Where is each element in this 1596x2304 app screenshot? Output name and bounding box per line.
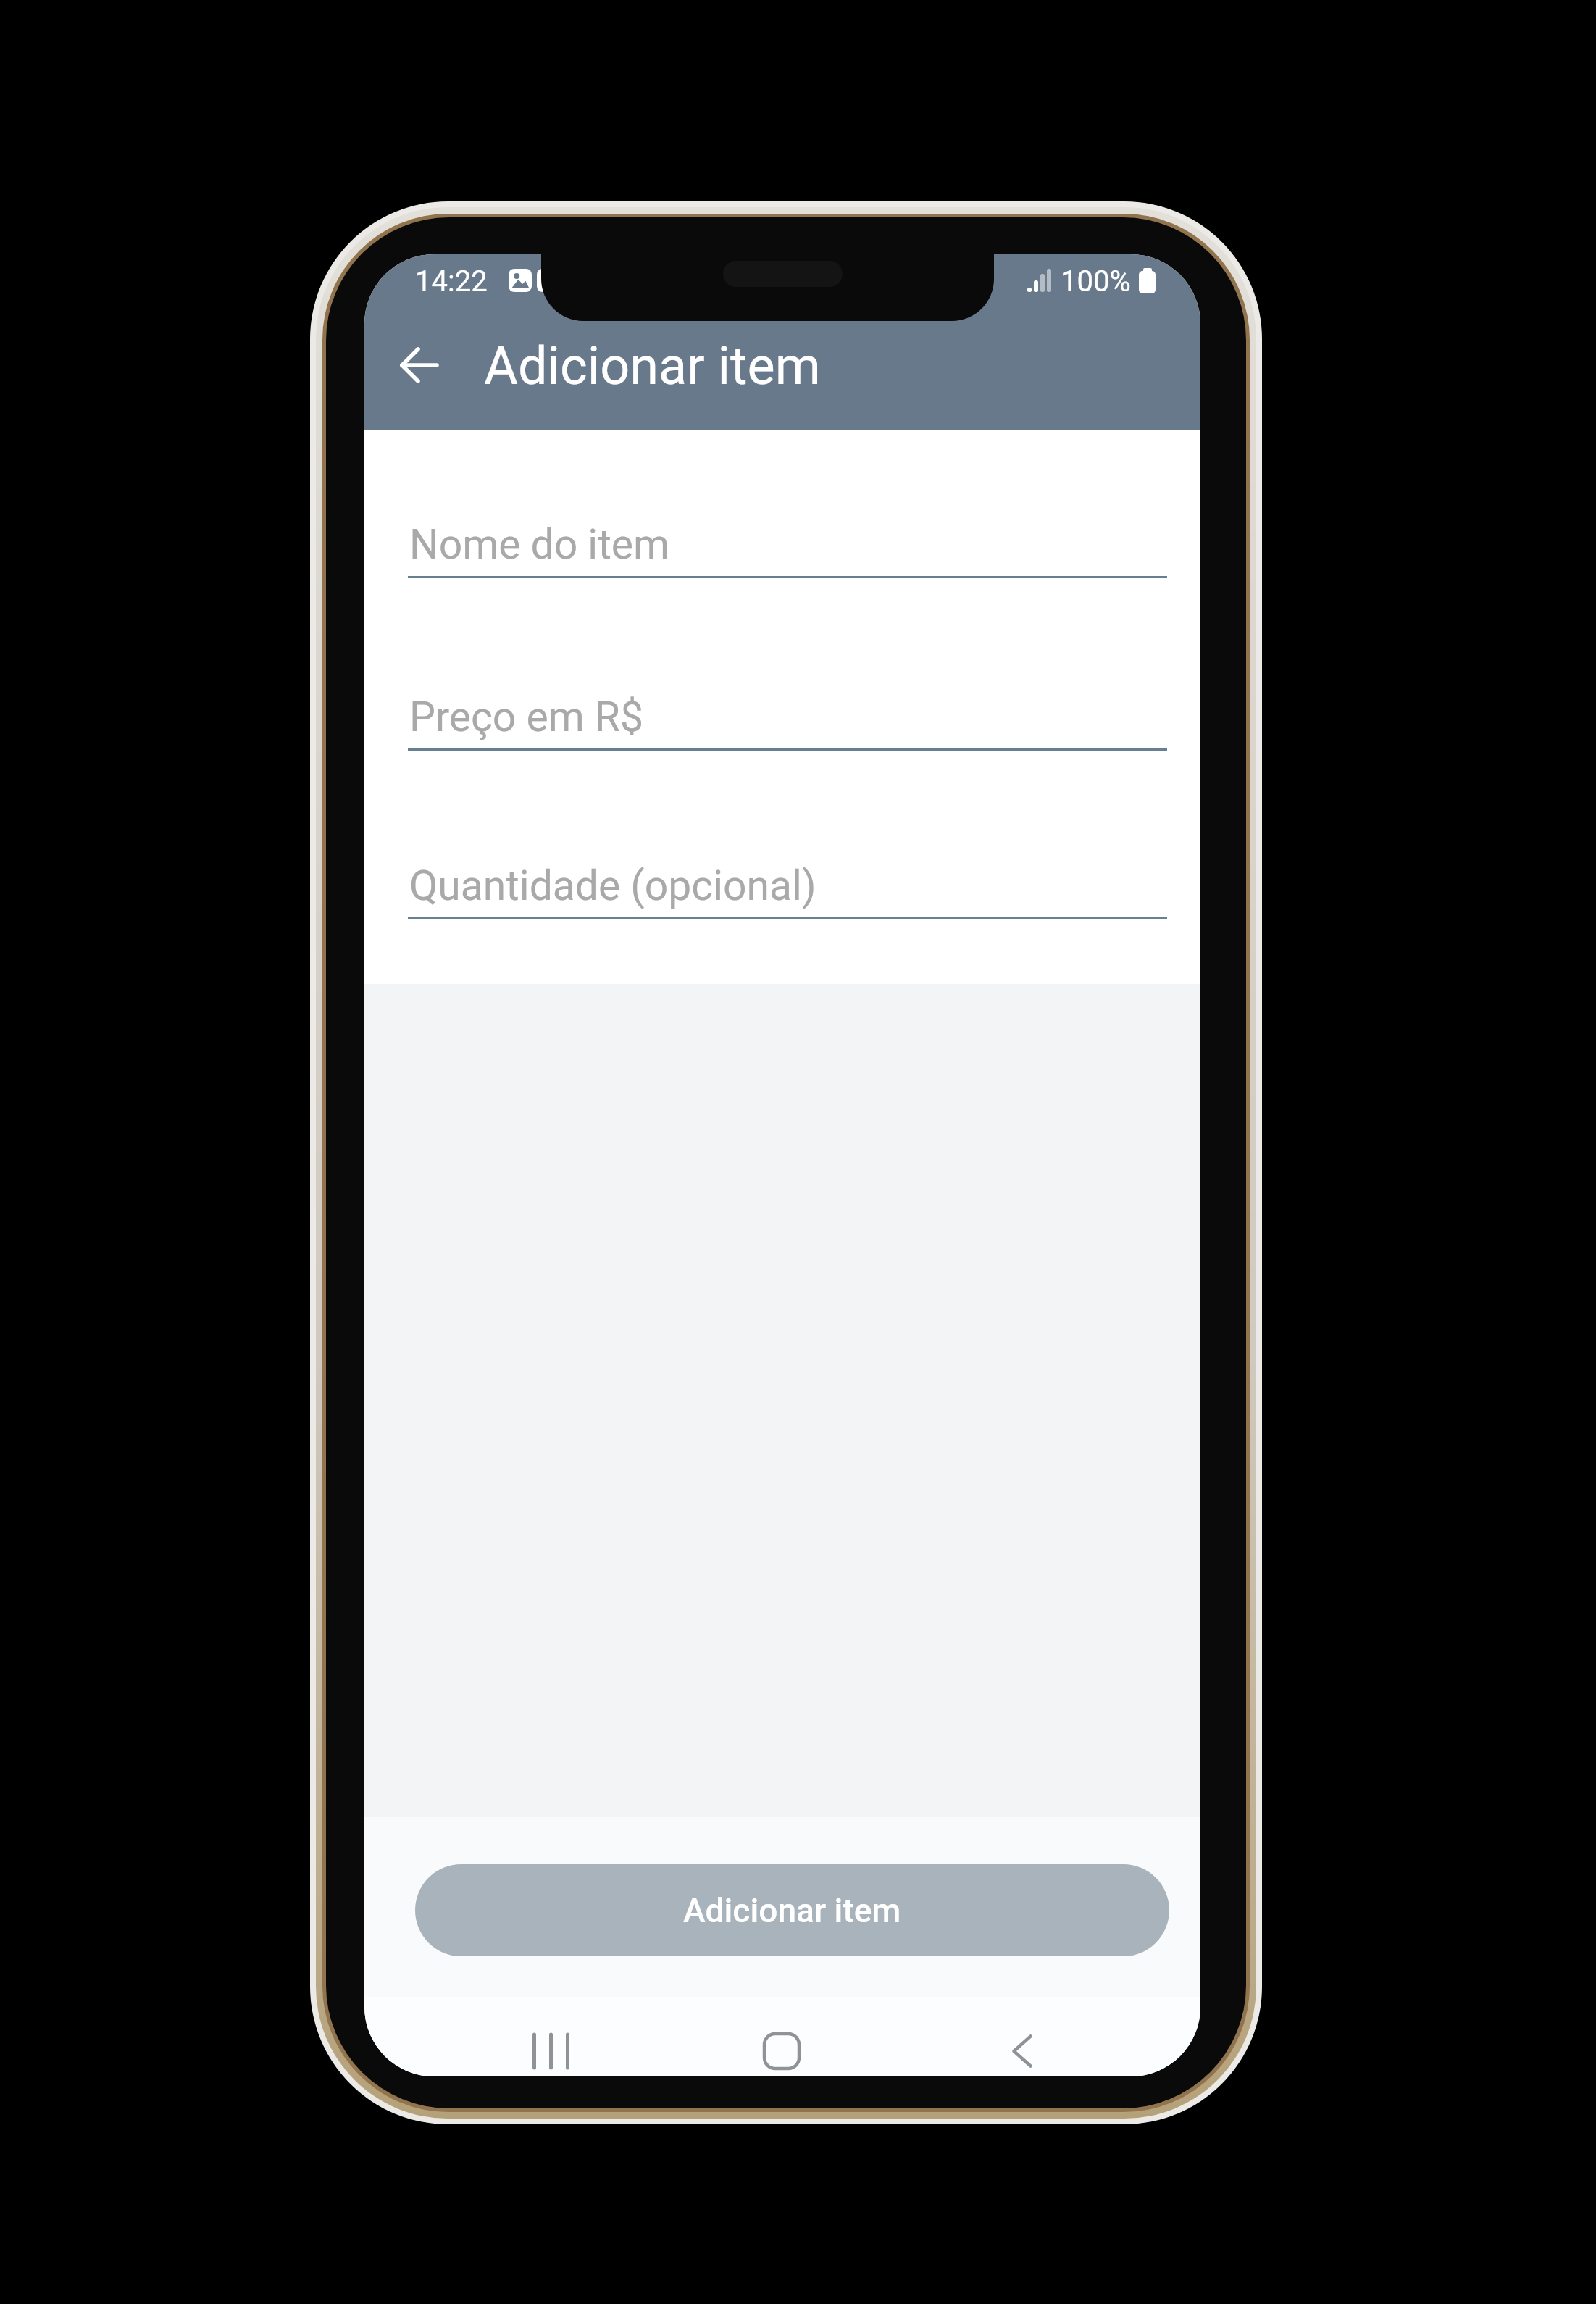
button[interactable] [383, 329, 456, 401]
button[interactable]: Nome do item [408, 503, 1167, 578]
staticText: 14:22 [415, 264, 488, 299]
staticText: Nome do item [409, 520, 670, 569]
button[interactable]: Quantidade (opcional) [408, 844, 1167, 919]
staticText: Preço em R$ [409, 693, 643, 741]
staticText: Adicionar item [484, 335, 821, 393]
button[interactable] [982, 2023, 1063, 2076]
staticText: 100% [1061, 264, 1131, 299]
button[interactable] [510, 2023, 591, 2076]
button[interactable]: Preço em R$ [408, 675, 1167, 751]
staticText: Quantidade (opcional) [409, 861, 816, 910]
button[interactable] [741, 2023, 822, 2076]
staticText: Adicionar item [683, 1891, 901, 1930]
button[interactable]: Adicionar item [415, 1864, 1169, 1956]
